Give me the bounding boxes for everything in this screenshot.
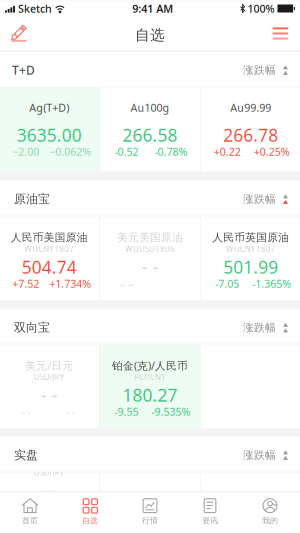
staticText: WTICNY1807 — [24, 244, 74, 254]
staticText: 9:41 AM — [132, 1, 173, 16]
staticText: -1.365% — [252, 276, 291, 291]
staticText: - - — [41, 383, 58, 406]
button[interactable]: 美元/日元 — [0, 440, 99, 524]
button[interactable]: Edit watchlist — [0, 16, 38, 50]
button[interactable]: 人民币美国原油 — [0, 216, 99, 300]
staticText: -0.78% — [154, 144, 187, 159]
button[interactable]: Sort by percent change — [227, 313, 300, 342]
staticText: 资讯 — [202, 516, 218, 525]
staticText: -9.55 — [114, 404, 138, 419]
button[interactable]: Menu — [261, 16, 300, 50]
staticText: WTIUSD1806 — [125, 244, 175, 254]
button[interactable]: Au100g — [100, 87, 200, 171]
staticText: 266.78 — [223, 123, 278, 146]
staticText: +1.734% — [49, 276, 91, 291]
staticText: - - — [21, 500, 30, 514]
button[interactable]: 美元美国原油 — [100, 216, 200, 300]
staticText: 自选 — [135, 26, 165, 44]
staticText: T+D — [12, 62, 35, 78]
staticText: - - — [21, 404, 30, 419]
button[interactable]: 铂金(克)/人民币 — [100, 344, 200, 428]
staticText: −2.00 — [12, 144, 39, 159]
staticText: −0.062% — [49, 144, 91, 159]
button[interactable]: Sort by percent change — [227, 55, 300, 85]
staticText: WTICNY1807 — [226, 244, 276, 254]
button[interactable]: Au99.99 — [201, 87, 300, 171]
staticText: Au100g — [130, 100, 169, 115]
button[interactable]: Sort by percent change — [227, 184, 300, 214]
staticText: - - — [66, 404, 75, 419]
staticText: 180.27 — [122, 383, 177, 406]
staticText: USD/JPY — [34, 467, 65, 478]
staticText: 504.74 — [22, 255, 77, 278]
staticText: 行情 — [142, 516, 158, 525]
staticText: - - — [41, 479, 58, 502]
staticText: 美元/日元 — [25, 358, 73, 373]
staticText: -9.535% — [151, 404, 190, 419]
staticText: 自选 — [82, 516, 98, 525]
staticText: 涨跌幅 — [243, 321, 276, 334]
staticText: +0.22 — [214, 144, 241, 159]
staticText: 实盘 — [14, 448, 38, 462]
staticText: -7.05 — [215, 276, 239, 291]
staticText: 首页 — [22, 516, 38, 525]
button[interactable]: 首页 — [0, 492, 60, 533]
staticText: 美元/日元 — [25, 454, 73, 468]
staticText: 原油宝 — [14, 192, 50, 206]
button[interactable]: 美元/日元 — [0, 344, 99, 428]
staticText: Au99.99 — [230, 100, 271, 115]
button[interactable]: Sort by percent change — [227, 440, 300, 470]
staticText: 双向宝 — [14, 320, 50, 335]
staticText: -0.52 — [114, 144, 138, 159]
staticText: 涨跌幅 — [243, 448, 276, 462]
staticText: 我的 — [262, 516, 278, 525]
staticText: 3635.00 — [17, 123, 82, 146]
staticText: 501.99 — [223, 255, 278, 278]
staticText: 人民币英国原油 — [212, 231, 289, 244]
staticText: 100% — [248, 1, 275, 16]
button[interactable]: 资讯 — [180, 492, 240, 533]
staticText: PLT/CNY — [134, 372, 166, 382]
button[interactable]: Ag(T+D) — [0, 87, 99, 171]
button[interactable]: 自选 — [60, 492, 120, 533]
staticText: +0.25% — [254, 144, 290, 159]
staticText: 铂金(克)/人民币 — [112, 358, 188, 373]
staticText: USD/JPY — [34, 372, 65, 382]
staticText: 涨跌幅 — [243, 192, 276, 206]
button[interactable]: 我的 — [240, 492, 300, 533]
button[interactable]: 人民币英国原油 — [201, 216, 300, 300]
button[interactable]: 行情 — [120, 492, 180, 533]
staticText: Sketch — [18, 1, 52, 16]
staticText: 美元美国原油 — [117, 231, 183, 244]
staticText: 涨跌幅 — [243, 63, 276, 77]
staticText: 人民币美国原油 — [11, 231, 88, 244]
staticText: 266.58 — [122, 123, 177, 146]
staticText: -- -- — [119, 276, 134, 291]
staticText: +7.52 — [12, 276, 39, 291]
staticText: Ag(T+D) — [29, 100, 69, 115]
staticText: - - — [141, 255, 158, 278]
